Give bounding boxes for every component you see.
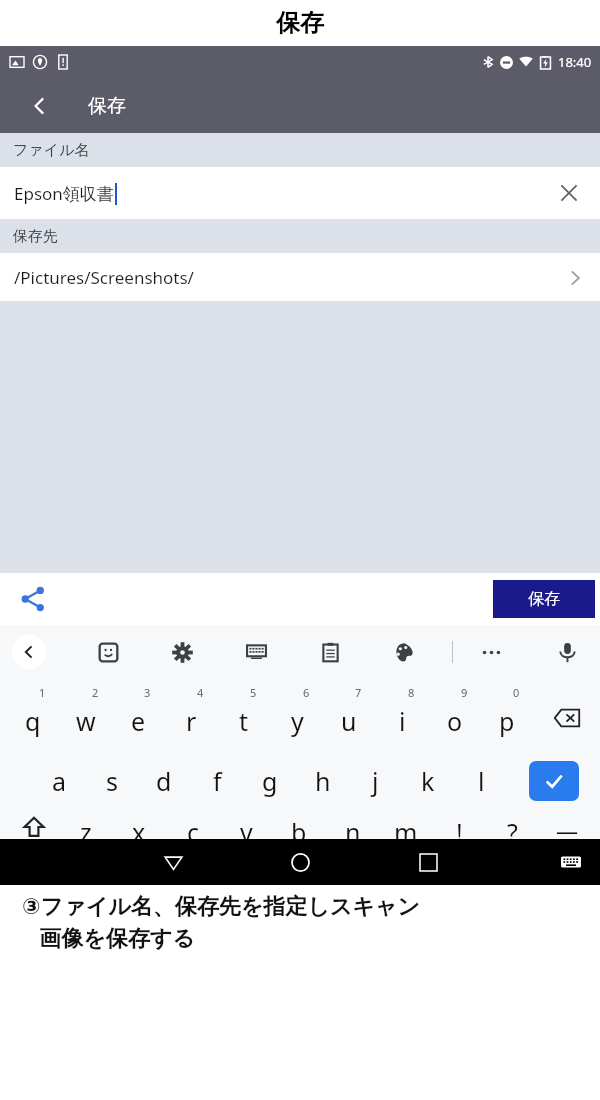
button[interactable]: More [471,632,511,672]
button[interactable]: ? [488,815,536,839]
button[interactable]: 5 [220,679,268,747]
button[interactable]: 2 [62,679,110,747]
button[interactable]: Keyboard [551,842,591,882]
button[interactable]: Enter [529,761,579,801]
staticText: p [499,704,515,738]
button[interactable]: Home [277,839,323,885]
button[interactable] [9,679,57,747]
staticText: e [131,704,146,738]
button[interactable]: k [404,747,452,815]
button[interactable]: 4 [167,679,215,747]
button[interactable]: 3 [114,679,162,747]
button[interactable] [273,679,321,747]
staticText: — [556,815,579,839]
button[interactable]: Clipboard [310,632,350,672]
button[interactable]: Theme [384,632,424,672]
button[interactable]: z [62,815,110,839]
button[interactable]: Voice input [547,632,587,672]
button[interactable]: 1 [9,679,57,747]
staticText: 18:40 [558,53,592,71]
staticText: j [372,764,379,798]
staticText: 1 [39,685,46,700]
staticText: 9 [461,685,468,700]
button[interactable]: c [169,815,217,839]
staticText: Epson領収書 [14,182,114,205]
button[interactable] [220,679,268,747]
button[interactable]: Clear [552,176,586,210]
button[interactable] [483,679,531,747]
staticText: 保存先 [13,227,58,246]
button[interactable]: m [382,815,430,839]
button[interactable]: Recents [405,839,451,885]
button[interactable]: Settings [162,632,202,672]
staticText: l [478,764,485,798]
staticText: m [394,815,418,839]
staticText: z [80,815,92,839]
staticText: t [239,704,249,738]
button[interactable]: j [351,747,399,815]
staticText: 0 [513,685,520,700]
button[interactable]: Backspace [543,679,591,747]
button[interactable]: Keyboard [236,632,276,672]
staticText: /Pictures/Screenshots/ [14,266,194,289]
button[interactable]: 0 [483,679,531,747]
button[interactable]: b [275,815,323,839]
button[interactable]: Back [12,635,46,669]
button[interactable]: 6 [273,679,321,747]
staticText: y [291,704,304,738]
staticText: 8 [408,685,415,700]
button[interactable]: x [115,815,163,839]
button[interactable]: 7 [325,679,373,747]
staticText: 2 [92,685,99,700]
button[interactable]: a [35,747,83,815]
button[interactable]: Epson領収書 [0,167,600,219]
button[interactable] [114,679,162,747]
button[interactable] [325,679,373,747]
staticText: 保存 [88,94,126,118]
staticText: h [315,764,331,798]
button[interactable]: /Pictures/Screenshots/ [0,253,600,301]
button[interactable] [167,679,215,747]
staticText: c [187,815,200,839]
button[interactable]: s [88,747,136,815]
staticText: ③ファイル名、保存先を指定しスキャン 画像を保存する [22,893,420,952]
button[interactable] [431,679,479,747]
staticText: w [76,704,96,738]
button[interactable]: n [329,815,377,839]
button[interactable]: Share [12,578,54,620]
staticText: o [447,704,463,738]
staticText: k [421,764,435,798]
staticText: b [291,815,307,839]
button[interactable]: g [246,747,294,815]
staticText: q [25,704,41,738]
staticText: a [52,764,67,798]
staticText: g [262,764,278,798]
staticText: s [106,764,118,798]
button[interactable]: ! [435,815,483,839]
button[interactable]: Back [20,86,60,126]
button[interactable] [378,679,426,747]
button[interactable]: 9 [431,679,479,747]
button[interactable]: 保存 [493,580,595,618]
button[interactable]: Shift [10,815,58,839]
button[interactable]: 8 [378,679,426,747]
button[interactable]: Back [150,839,196,885]
button[interactable]: l [457,747,505,815]
staticText: 3 [144,685,151,700]
button[interactable]: h [299,747,347,815]
staticText: r [186,704,197,738]
staticText: ? [507,815,518,839]
button[interactable]: Dash [544,815,590,839]
staticText: 4 [197,685,204,700]
staticText: v [240,815,253,839]
staticText: ファイル名 [13,141,90,160]
button[interactable]: Stickers [88,632,128,672]
staticText: ! [456,815,463,839]
button[interactable]: v [222,815,270,839]
button[interactable]: d [140,747,188,815]
staticText: i [399,704,406,738]
button[interactable] [62,679,110,747]
staticText: u [341,704,357,738]
button[interactable]: f [193,747,241,815]
staticText: 6 [303,685,310,700]
